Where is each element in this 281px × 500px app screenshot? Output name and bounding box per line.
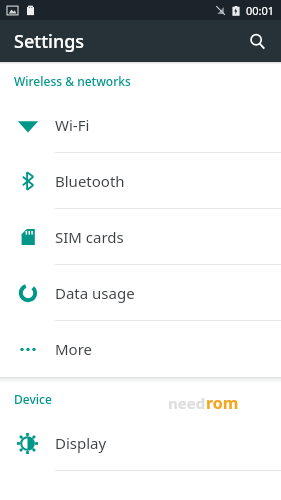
staticText: 00:01 [246, 3, 275, 18]
staticText: More [55, 339, 93, 359]
staticText: SIM cards [55, 227, 124, 247]
button[interactable]: Wi-Fi [0, 97, 281, 153]
staticText: need [168, 393, 206, 413]
button[interactable]: Bluetooth [0, 153, 281, 209]
staticText: Data usage [55, 283, 135, 303]
staticText: Settings [14, 29, 85, 54]
button[interactable]: More [0, 321, 281, 377]
staticText: Bluetooth [55, 171, 125, 191]
button[interactable]: Search [239, 23, 275, 59]
button[interactable]: Data usage [0, 265, 281, 321]
staticText: Device [14, 391, 52, 407]
button[interactable]: SIM cards [0, 209, 281, 265]
button[interactable]: Display [0, 415, 281, 471]
staticText: rom [206, 392, 239, 414]
staticText: Display [55, 433, 107, 453]
staticText: Wi-Fi [55, 115, 90, 135]
staticText: Wireless & networks [14, 73, 131, 89]
